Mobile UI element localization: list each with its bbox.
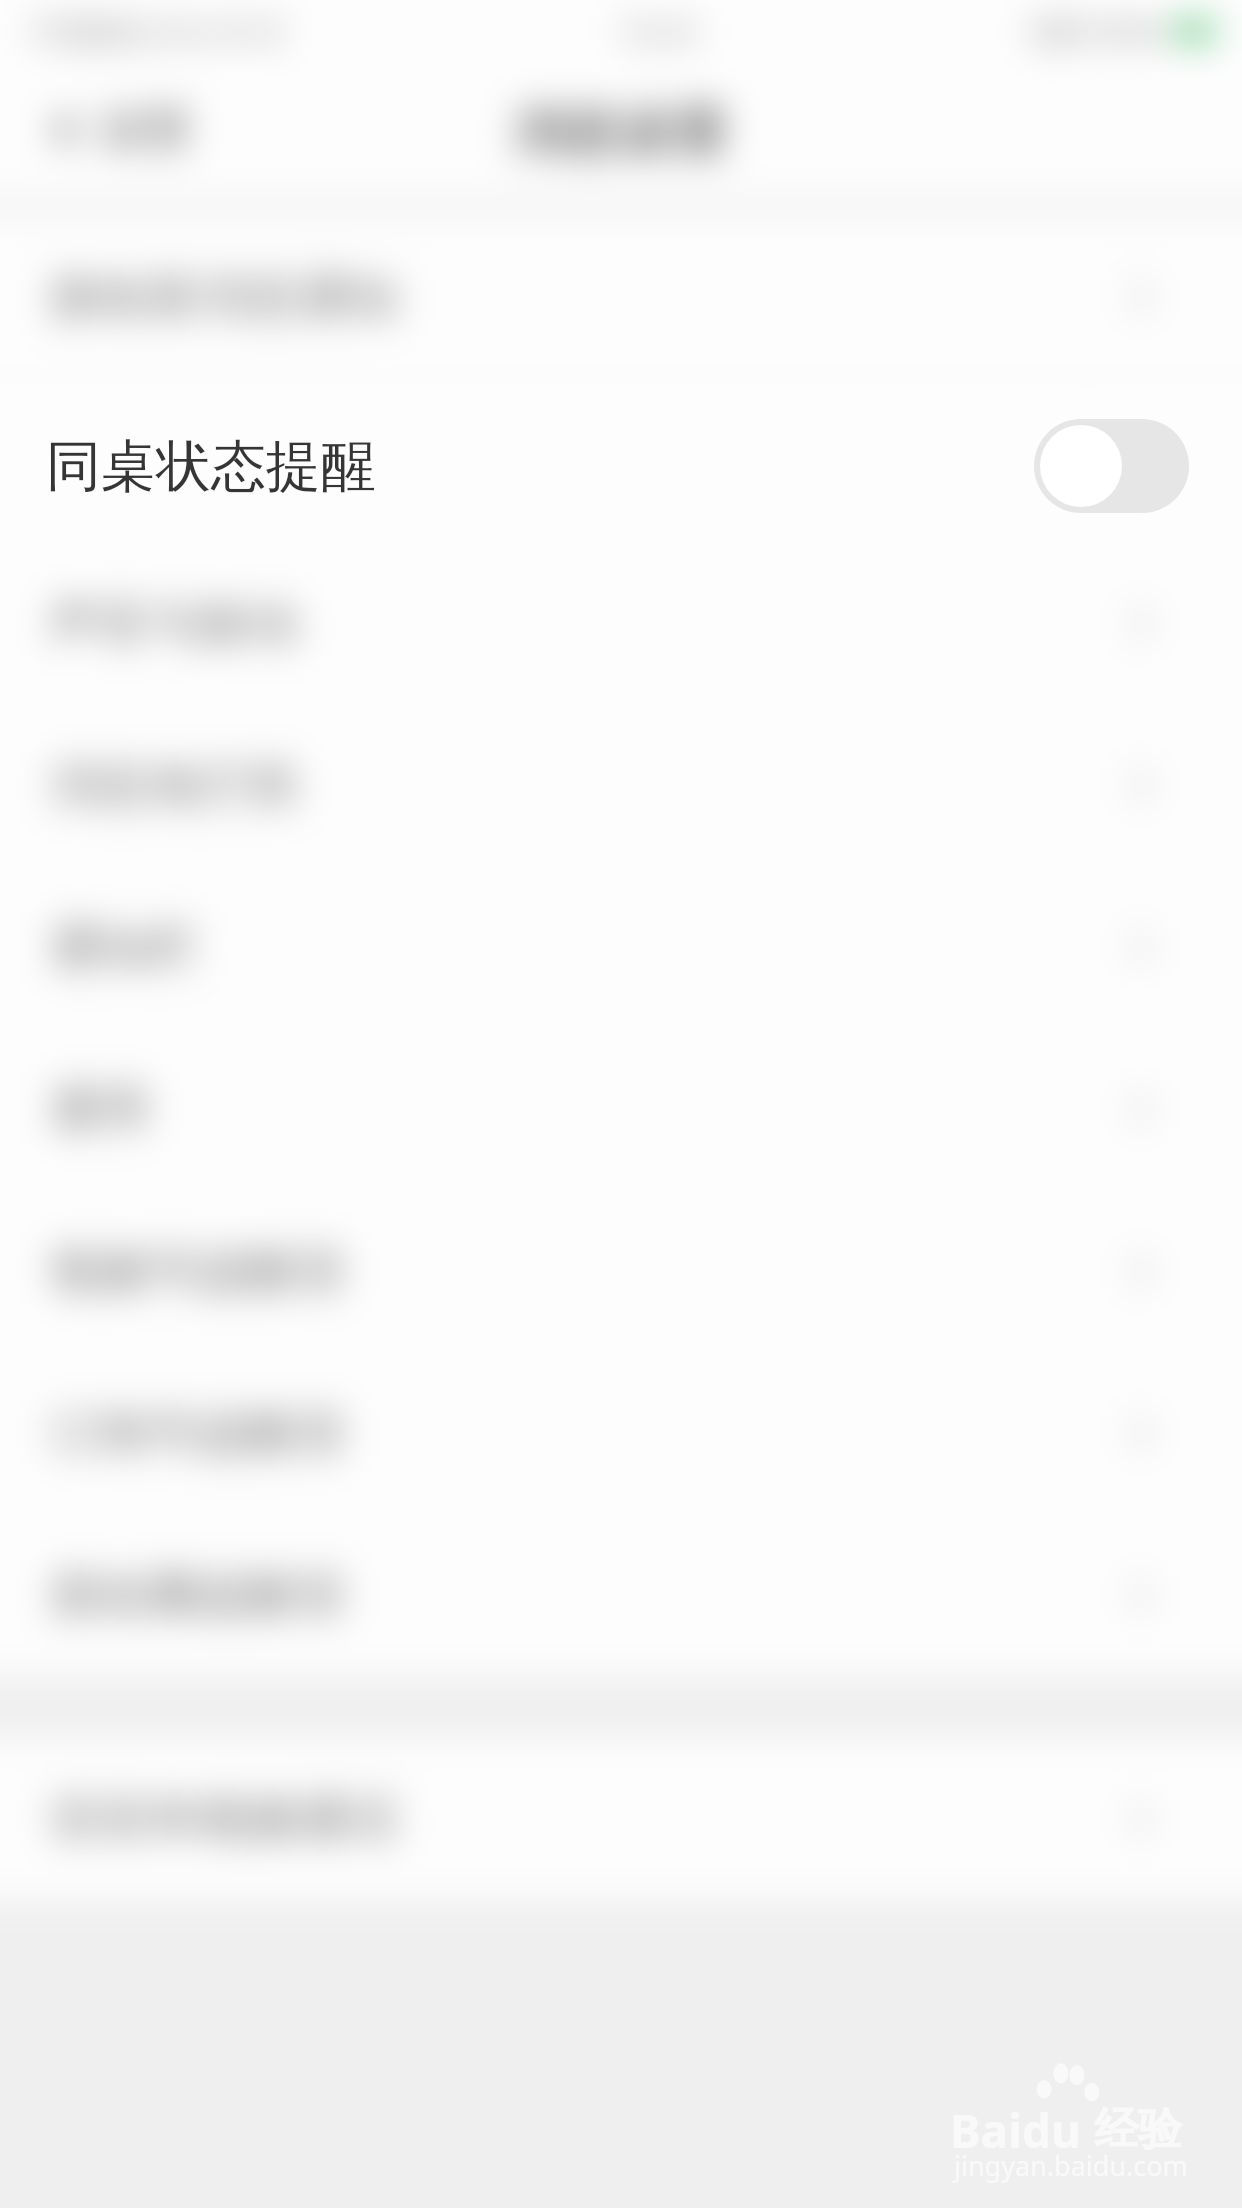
button[interactable]: 同桌状态提醒 [0,385,1242,547]
staticText: 中国移动 4G ılll ılll [30,10,283,52]
staticText: 经验 [1094,2102,1182,2157]
button[interactable]: 声音与振动 [0,542,1242,704]
staticText: 闹钟 88% [1032,10,1164,52]
button[interactable]: 同桌状态提醒 switch, off [999,414,1154,508]
staticText: Baidu [950,2099,1081,2162]
staticText: 通用 [49,1078,149,1141]
button[interactable]: 订阅号提醒音 [0,1352,1242,1514]
button[interactable]: 语音和视频通话 [0,1738,1242,1900]
staticText: 语音和视频通话 [49,1788,399,1851]
staticText: 通知栏 [49,916,199,979]
staticText: jingyan.baidu.com [954,2147,1188,2184]
button[interactable]: 朋友圈提醒音 [0,1514,1242,1676]
staticText: 声音与振动 [49,592,299,655]
button[interactable]: 设置 [100,101,192,159]
button[interactable]: 消息免打扰 [0,704,1242,866]
staticText: 消息免打扰 [49,754,299,817]
staticText: 朋友圈提醒音 [49,1564,349,1627]
button[interactable]: 接收新消息通知 [0,216,1242,378]
button[interactable]: 同桌状态提醒 [0,380,1242,542]
staticText: 同桌状态提醒 [49,430,349,493]
staticText: 同桌状态提醒 [46,432,376,501]
staticText: 接收新消息通知 [49,266,399,329]
staticText: 订阅号提醒音 [49,1402,349,1465]
staticText: 消息设置 [513,98,729,166]
button[interactable]: 通知栏 [0,866,1242,1028]
staticText: 设置 [100,101,192,159]
staticText: 视频号提醒音 [49,1240,349,1303]
button[interactable]: 同桌状态提醒 switch, off [1034,419,1189,513]
button[interactable]: 返回 Back [34,97,100,163]
button[interactable]: 通用 [0,1028,1242,1190]
button[interactable]: 视频号提醒音 [0,1190,1242,1352]
